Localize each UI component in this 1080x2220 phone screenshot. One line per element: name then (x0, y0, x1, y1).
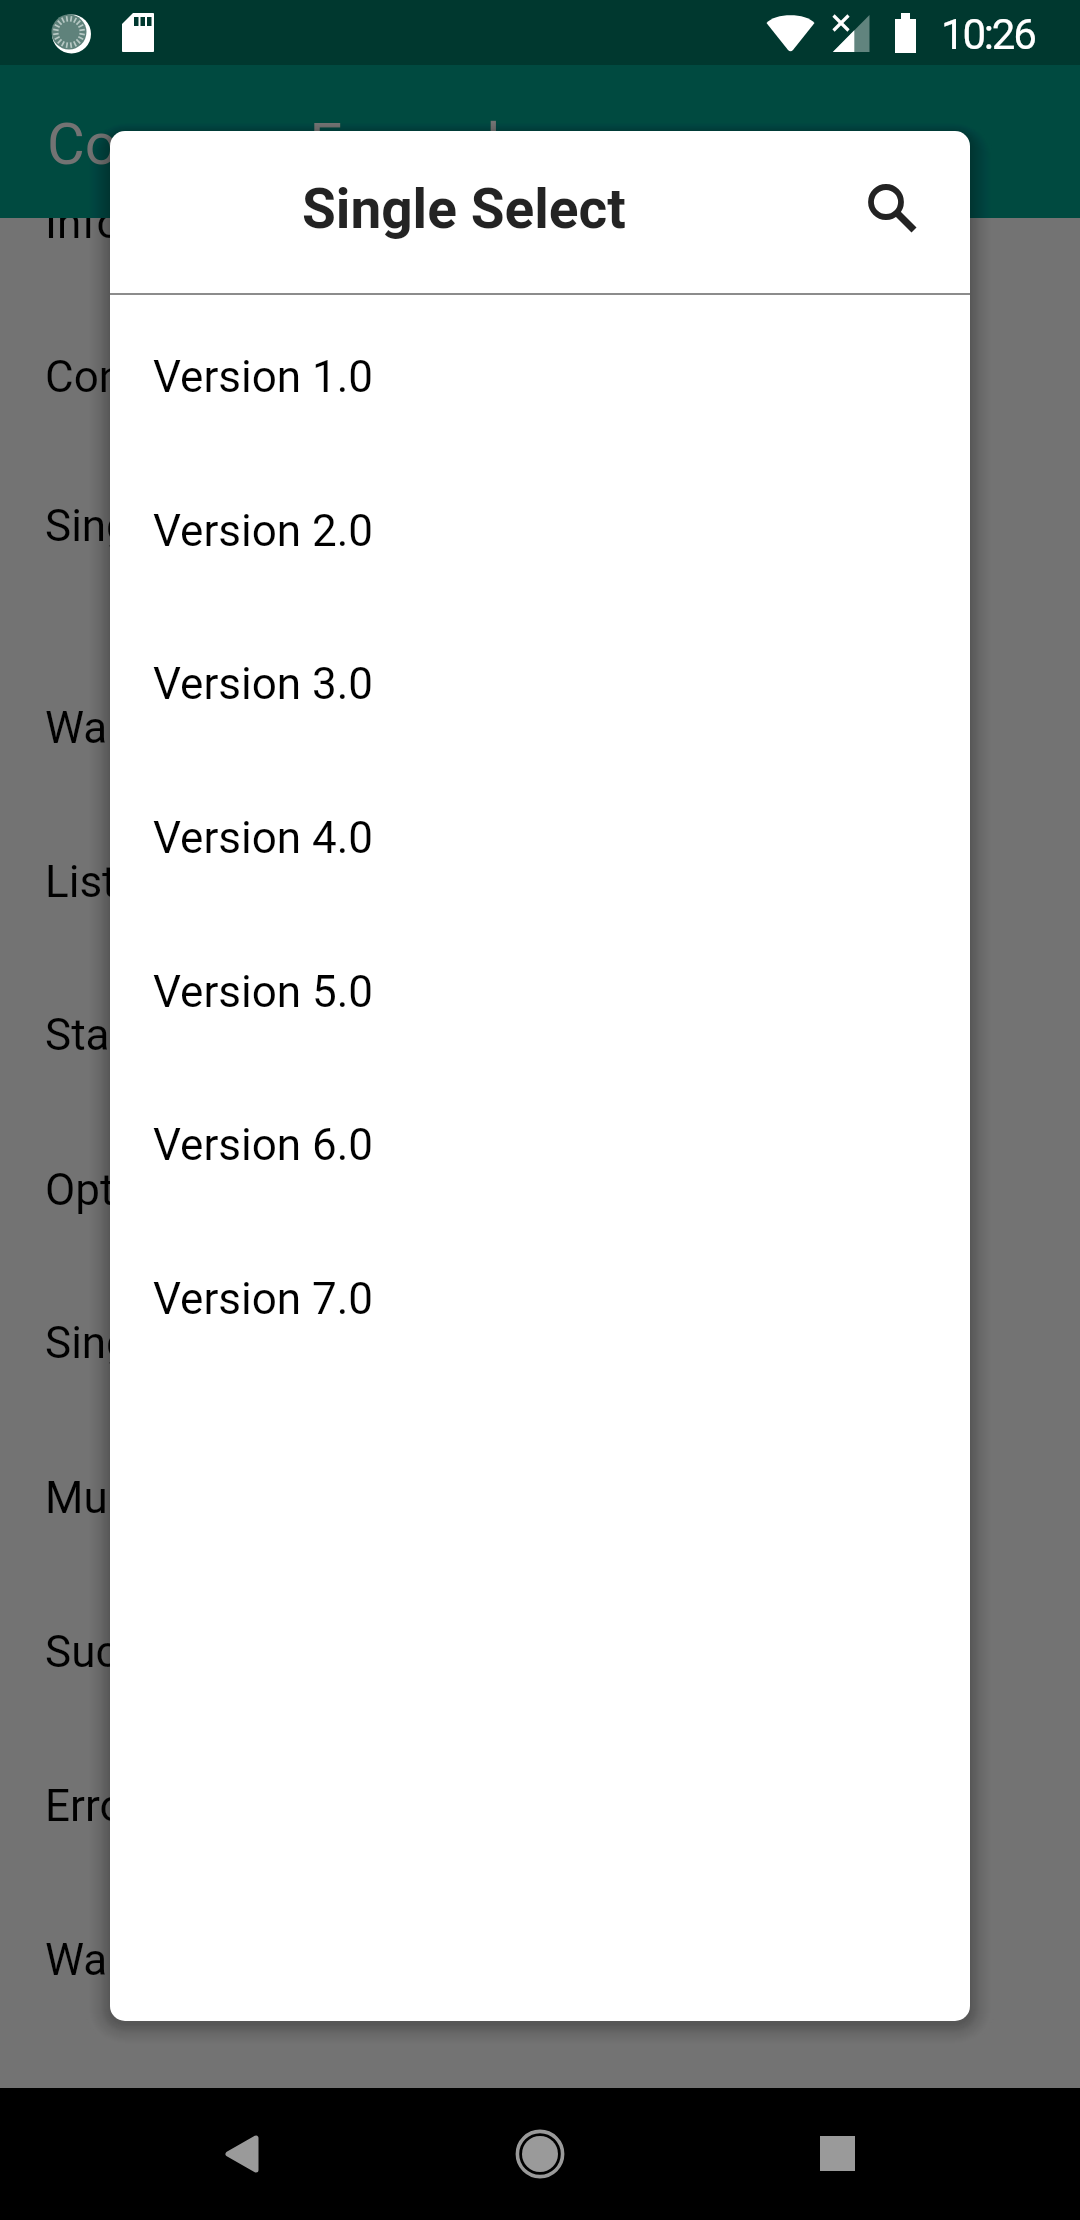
button[interactable]: Success Message (0, 1574, 1080, 1727)
staticText: Error Message (45, 1780, 330, 1832)
staticText: Version 7.0 (153, 1273, 374, 1325)
button[interactable]: Version 5.0 (110, 915, 970, 1069)
button[interactable]: Version 4.0 (110, 761, 970, 915)
button[interactable]: Warning Dialog (0, 650, 1080, 803)
button[interactable]: Error Message (0, 1728, 1080, 1881)
staticText: Single Select (302, 177, 626, 241)
button[interactable]: Standard Dialog (0, 957, 1080, 1110)
staticText: Warning Dialog (45, 702, 342, 754)
button[interactable]: Version 6.0 (110, 1068, 970, 1222)
staticText: Version 5.0 (153, 966, 374, 1018)
button[interactable]: Version 1.0 (110, 300, 970, 454)
button[interactable]: Search (842, 162, 934, 250)
button[interactable]: Version 7.0 (110, 1222, 970, 1376)
staticText: Confirmation Dialog (45, 351, 435, 403)
staticText: Single Choice Dialog (45, 500, 446, 552)
staticText: Version 4.0 (153, 812, 374, 864)
button[interactable]: Back (182, 2088, 302, 2220)
staticText: Version 3.0 (153, 658, 374, 710)
staticText: List Dialog (45, 856, 252, 908)
staticText: Version 1.0 (153, 351, 374, 403)
staticText: Success Message (45, 1626, 401, 1678)
staticText: Information Dialog (45, 218, 409, 249)
staticText: Standard Dialog (45, 1009, 357, 1061)
button[interactable]: Confirmation Dialog (0, 299, 1080, 452)
staticText: Multi Select Dialog (45, 1472, 411, 1524)
staticText: Version 2.0 (153, 505, 374, 557)
button[interactable]: List Dialog (0, 804, 1080, 957)
staticText: Option Dialog (45, 1164, 310, 1216)
staticText: Compose Example (47, 110, 531, 178)
button[interactable]: Information Dialog (0, 218, 1080, 298)
button[interactable]: Home (480, 2088, 600, 2220)
staticText: Warning Message (45, 1934, 397, 1986)
button[interactable]: Multi Select Dialog (0, 1420, 1080, 1573)
staticText: 10:26 (941, 10, 1035, 59)
button[interactable]: Version 2.0 (110, 454, 970, 608)
staticText: Single Select Dialog (45, 1317, 432, 1369)
button[interactable]: Warning Message (0, 1882, 1080, 2035)
button[interactable]: Single Select Dialog (0, 1265, 1080, 1418)
button[interactable]: Single Choice Dialog (0, 448, 1080, 601)
staticText: Version 6.0 (153, 1119, 374, 1171)
button[interactable]: Recent apps (778, 2088, 898, 2220)
button[interactable]: Version 3.0 (110, 607, 970, 761)
button[interactable]: Option Dialog (0, 1112, 1080, 1265)
